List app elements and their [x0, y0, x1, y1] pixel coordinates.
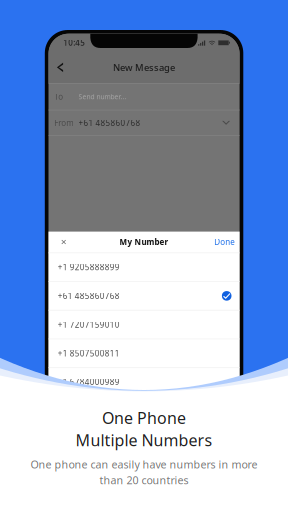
staticText: Send number... — [79, 92, 127, 101]
button[interactable]: +1 7207159010 — [48, 311, 240, 339]
staticText: +1 8507500811 — [58, 348, 120, 359]
staticText: New Message — [113, 61, 175, 74]
button[interactable]: +1 9205888899 — [48, 253, 240, 281]
staticText: +61 485860768 — [79, 117, 141, 128]
button[interactable]: +1 8507500811 — [48, 339, 240, 367]
button[interactable]: Close — [57, 233, 71, 250]
staticText: One phone can easily have numbers in mor… — [30, 457, 257, 471]
staticText: My Number — [119, 237, 168, 247]
staticText: Multiple Numbers — [75, 429, 212, 451]
staticText: +1 9205888899 — [58, 262, 120, 272]
staticText: than 20 countries — [99, 473, 188, 487]
staticText: +1 6784000989 — [58, 377, 120, 387]
button[interactable]: +1 6784000989 — [48, 368, 240, 396]
staticText: Done — [214, 237, 235, 247]
staticText: 10:45 — [63, 37, 85, 48]
staticText: +61 485860768 — [58, 291, 120, 301]
staticText: +1 7207159010 — [58, 319, 120, 330]
staticText: From — [54, 117, 73, 128]
staticText: One Phone — [102, 407, 186, 428]
button[interactable]: +61 485860768 — [48, 282, 240, 310]
staticText: To — [54, 91, 63, 102]
button[interactable]: Done — [214, 233, 235, 250]
